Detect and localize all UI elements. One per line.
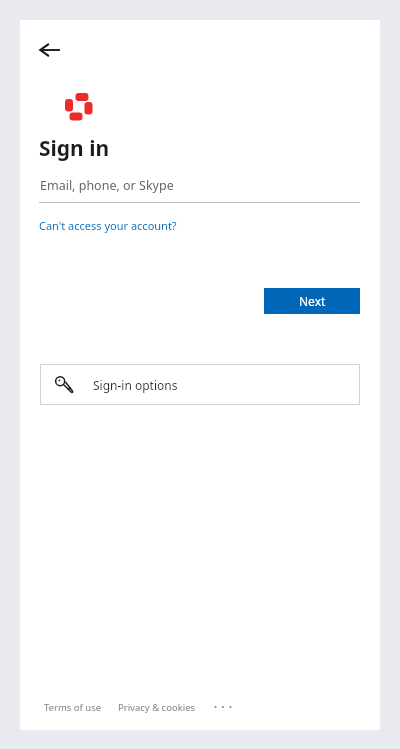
staticText: Sign-in options [93, 377, 178, 393]
button[interactable]: Sign-in options [40, 364, 360, 405]
staticText: Terms of use [44, 701, 102, 714]
button[interactable]: Terms of use [44, 701, 102, 714]
button[interactable]: Next [264, 288, 360, 314]
button[interactable]: Back [32, 32, 68, 68]
button[interactable]: Privacy & cookies [118, 701, 196, 714]
staticText: Privacy & cookies [118, 701, 196, 714]
button[interactable]: Email, phone, or Skype [39, 177, 360, 203]
staticText: Email, phone, or Skype [40, 177, 174, 194]
staticText: Sign in [39, 134, 110, 163]
button[interactable]: More options [210, 698, 236, 716]
staticText: Can't access your account? [39, 218, 177, 233]
button[interactable]: Can't access your account? [39, 218, 177, 233]
staticText: Next [299, 293, 326, 309]
